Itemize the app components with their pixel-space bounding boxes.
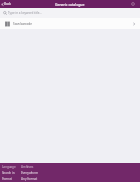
other: Open bbox=[132, 22, 136, 26]
button[interactable]: Search in bbox=[0, 170, 140, 176]
staticText: Language bbox=[2, 165, 16, 169]
button[interactable]: Type in a keyword title... bbox=[0, 8, 140, 18]
staticText: Generic catalogue bbox=[55, 2, 85, 7]
staticText: Back bbox=[4, 2, 11, 6]
button[interactable]: Format bbox=[0, 176, 140, 182]
button[interactable]: Scan barcode bbox=[0, 18, 140, 29]
staticText: Type in a keyword title... bbox=[8, 11, 42, 15]
staticText: Scan barcode bbox=[13, 22, 32, 26]
staticText: Format bbox=[2, 177, 12, 181]
staticText: Search in bbox=[2, 171, 15, 175]
button[interactable]: Profile bbox=[128, 0, 140, 8]
staticText: Everywhere bbox=[21, 171, 38, 175]
button[interactable]: Back bbox=[0, 0, 13, 8]
staticText: Archives bbox=[21, 165, 34, 169]
staticText: Any format bbox=[21, 177, 38, 181]
button[interactable]: Language bbox=[0, 164, 140, 170]
